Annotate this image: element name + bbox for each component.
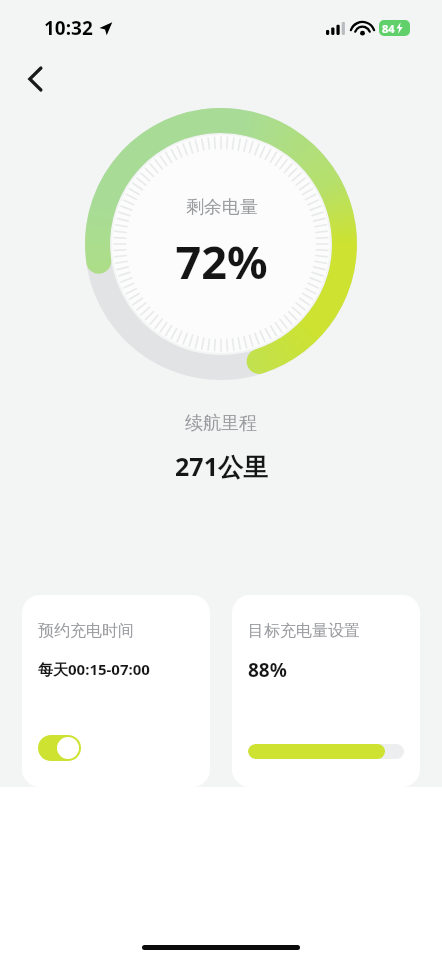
button[interactable]: 目标充电量设置 bbox=[232, 595, 420, 787]
staticText: 84 bbox=[382, 21, 395, 36]
button[interactable]: 预约充电时间 bbox=[22, 595, 210, 787]
staticText: 10:32 bbox=[44, 15, 93, 41]
staticText: 续航里程 bbox=[185, 412, 257, 435]
staticText: 预约充电时间 bbox=[38, 621, 134, 641]
staticText: 剩余电量 bbox=[186, 196, 258, 219]
staticText: 每天00:15-07:00 bbox=[38, 659, 150, 679]
staticText: 72% bbox=[175, 231, 268, 292]
staticText: 271公里 bbox=[175, 449, 268, 483]
button[interactable]: Scheduled charging toggle bbox=[38, 735, 81, 761]
staticText: 目标充电量设置 bbox=[248, 621, 360, 641]
staticText: 88% bbox=[248, 657, 287, 683]
button[interactable]: Back bbox=[14, 58, 56, 100]
button[interactable]: Target charge level slider bbox=[248, 744, 404, 759]
